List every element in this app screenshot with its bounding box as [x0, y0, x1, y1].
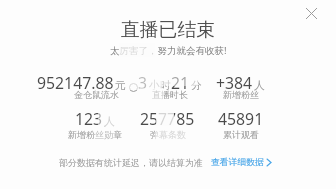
- staticText: 人: [104, 115, 115, 129]
- staticText: 分: [191, 79, 202, 93]
- staticText: 太厉害了，努力就会有收获!: [110, 44, 227, 57]
- staticText: 新增粉丝勋章: [68, 129, 122, 140]
- button[interactable]: 查看详细数据: [211, 157, 271, 168]
- staticText: 3: [138, 72, 148, 94]
- staticText: 直播时长: [152, 89, 188, 100]
- staticText: 257785: [140, 108, 195, 130]
- staticText: +384: [216, 72, 253, 94]
- staticText: 直播已结束: [121, 18, 215, 42]
- staticText: 小时: [149, 79, 171, 93]
- staticText: 人: [254, 79, 265, 93]
- button[interactable]: Close: [301, 3, 321, 23]
- staticText: 查看详细数据: [211, 157, 264, 168]
- staticText: 累计观看: [223, 129, 259, 140]
- staticText: 952147.88: [37, 72, 114, 94]
- staticText: 部分数据有统计延迟，请以结算为准: [59, 157, 203, 168]
- staticText: 21: [171, 72, 190, 94]
- staticText: 金仓鼠流水: [74, 89, 119, 100]
- staticText: 弹幕条数: [150, 129, 186, 140]
- staticText: 45891: [218, 108, 264, 130]
- staticText: 123: [75, 108, 103, 130]
- staticText: 新增粉丝: [223, 89, 259, 100]
- staticText: 元: [115, 79, 126, 93]
